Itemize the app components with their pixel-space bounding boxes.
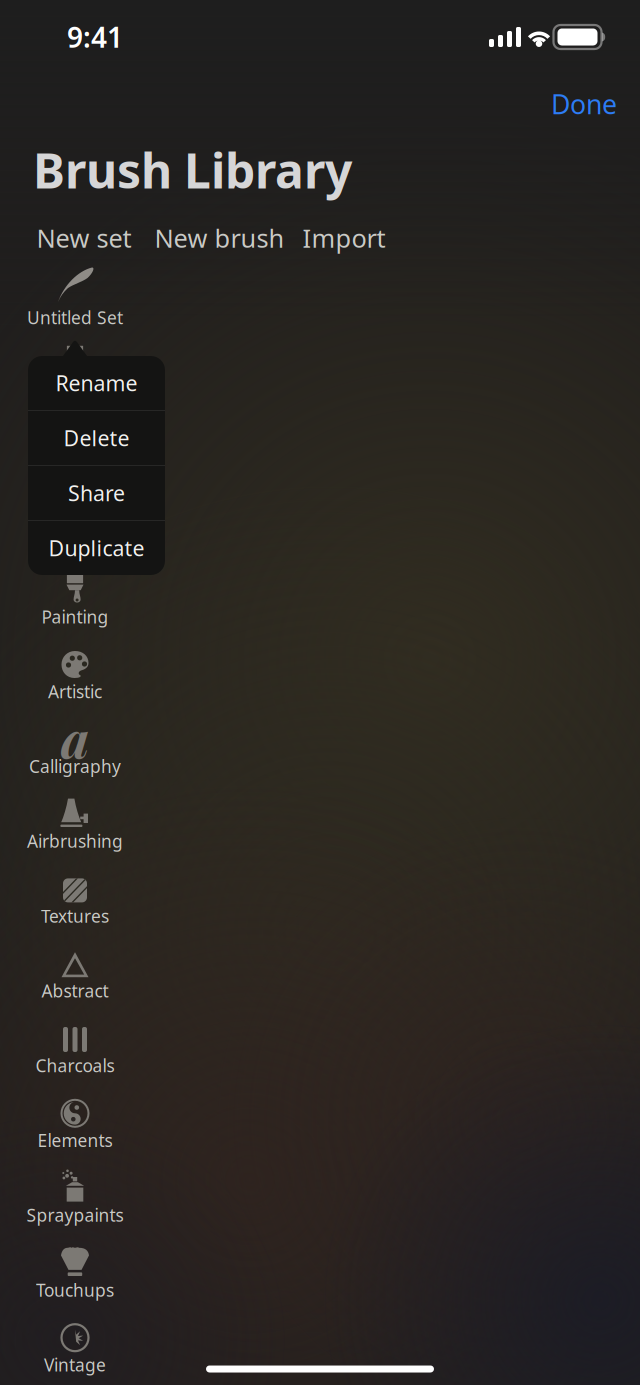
staticText: Delete bbox=[63, 424, 129, 452]
staticText: Share bbox=[68, 479, 125, 507]
staticText: Inking bbox=[49, 456, 101, 479]
button[interactable]: Untitled Set bbox=[0, 263, 150, 337]
staticText: Airbrushing bbox=[27, 830, 123, 853]
staticText: New set bbox=[36, 221, 131, 255]
button[interactable]: Spraypaints bbox=[0, 1161, 150, 1235]
button[interactable]: Duplicate bbox=[28, 521, 165, 575]
button[interactable]: Rename bbox=[28, 356, 165, 410]
button[interactable]: Textures bbox=[0, 861, 150, 935]
staticText: Sketching bbox=[35, 381, 115, 404]
button[interactable]: Artistic bbox=[0, 637, 150, 711]
staticText: Textures bbox=[41, 904, 109, 927]
button[interactable]: New set bbox=[34, 217, 134, 259]
staticText: Untitled Set bbox=[27, 306, 123, 329]
button[interactable]: Done bbox=[524, 75, 640, 133]
button[interactable]: Charcoals bbox=[0, 1011, 150, 1085]
staticText: Duplicate bbox=[48, 534, 144, 562]
button[interactable]: Elements bbox=[0, 1086, 150, 1160]
button[interactable]: Import bbox=[304, 217, 384, 259]
staticText: New brush bbox=[154, 221, 284, 255]
button[interactable]: Inking bbox=[0, 413, 150, 487]
button[interactable]: a bbox=[0, 487, 150, 561]
staticText: Vintage bbox=[44, 1353, 106, 1376]
staticText: Import bbox=[302, 221, 385, 255]
staticText: Artistic bbox=[48, 680, 102, 703]
button[interactable]: Airbrushing bbox=[0, 787, 150, 861]
staticText: Done bbox=[551, 86, 617, 122]
staticText: Calligraphy bbox=[29, 755, 121, 778]
staticText: Abstract bbox=[41, 979, 108, 1002]
staticText: Drawing bbox=[40, 530, 110, 553]
button[interactable]: Painting bbox=[0, 562, 150, 636]
button[interactable]: Touchups bbox=[0, 1235, 150, 1309]
staticText: a bbox=[61, 480, 89, 547]
button[interactable]: Delete bbox=[28, 411, 165, 465]
staticText: Brush Library bbox=[33, 138, 352, 202]
button[interactable]: a bbox=[0, 712, 150, 786]
staticText: Painting bbox=[41, 605, 108, 628]
button[interactable]: Sketching bbox=[0, 338, 150, 412]
staticText: Elements bbox=[37, 1129, 112, 1152]
staticText: a bbox=[61, 704, 89, 771]
staticText: 9:41 bbox=[67, 18, 123, 56]
staticText: Charcoals bbox=[35, 1054, 114, 1077]
button[interactable]: Share bbox=[28, 466, 165, 520]
staticText: Touchups bbox=[36, 1278, 114, 1301]
staticText: Rename bbox=[55, 369, 137, 397]
button[interactable]: Abstract bbox=[0, 936, 150, 1010]
button[interactable]: Vintage bbox=[0, 1310, 150, 1384]
staticText: Spraypaints bbox=[26, 1204, 123, 1227]
button[interactable]: New brush bbox=[157, 217, 282, 259]
